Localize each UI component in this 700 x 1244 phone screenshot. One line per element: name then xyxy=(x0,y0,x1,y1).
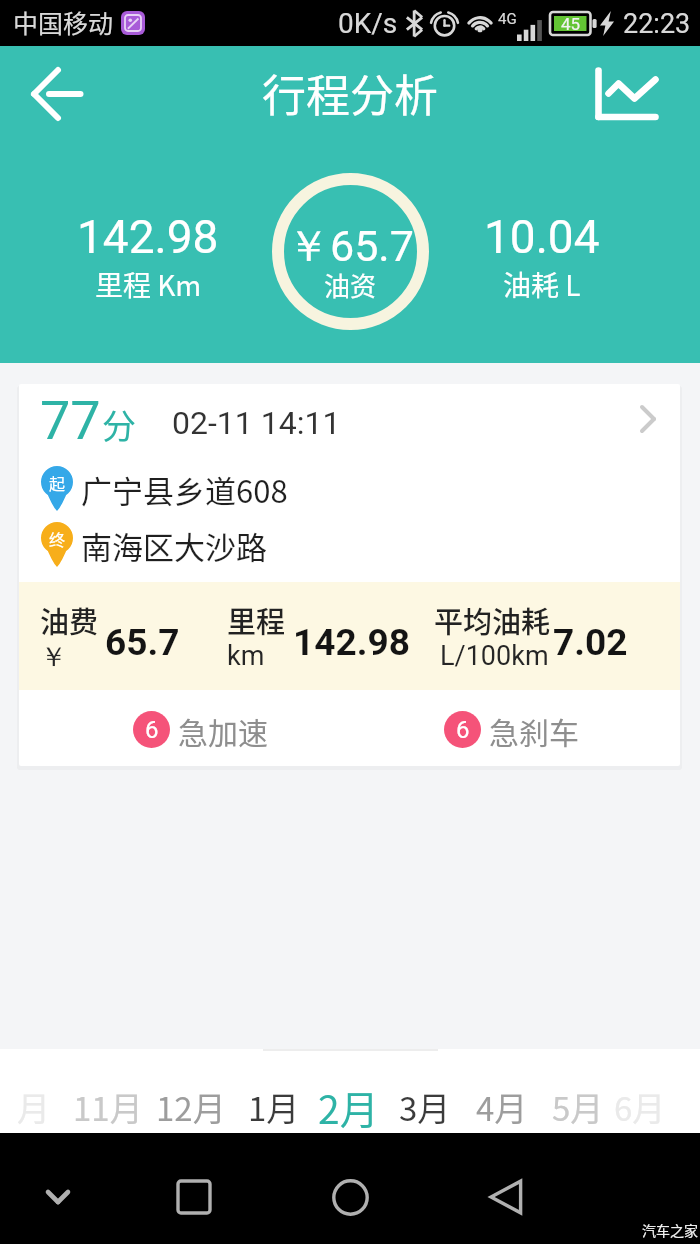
staticText: 月 xyxy=(17,1083,50,1131)
button[interactable]: 3月 xyxy=(387,1049,463,1133)
staticText: 142.98 xyxy=(77,210,219,264)
staticText: 142.98 xyxy=(293,621,410,664)
button[interactable]: Back xyxy=(449,1157,563,1237)
button[interactable]: Back xyxy=(11,48,103,140)
button[interactable]: Open trip detail xyxy=(618,389,677,448)
staticText: 3月 xyxy=(399,1083,451,1131)
staticText: 77 xyxy=(40,389,101,452)
button[interactable]: 6 xyxy=(133,709,260,749)
staticText: 急刹车 xyxy=(489,709,579,749)
staticText: 急加速 xyxy=(178,709,268,749)
staticText: 7.02 xyxy=(553,621,628,664)
button[interactable]: Statistics chart xyxy=(581,48,673,140)
staticText: 4月 xyxy=(476,1083,528,1131)
staticText: 行程分析 xyxy=(262,61,438,125)
staticText: 油耗 L xyxy=(503,264,581,305)
button[interactable]: 77 xyxy=(19,384,680,766)
button[interactable]: 6 xyxy=(444,709,571,749)
staticText: 10.04 xyxy=(484,210,600,264)
staticText: 12月 xyxy=(156,1083,226,1131)
button[interactable]: Home xyxy=(293,1157,407,1237)
staticText: ￥ xyxy=(40,640,67,674)
staticText: ￥65.7 xyxy=(287,220,414,274)
button[interactable]: 6月 xyxy=(602,1049,678,1133)
staticText: 终 xyxy=(49,527,66,550)
staticText: 里程 xyxy=(227,599,286,641)
staticText: 南海区大沙路 xyxy=(81,523,267,568)
staticText: 平均油耗 xyxy=(434,599,551,641)
staticText: 中国移动 xyxy=(13,4,114,40)
staticText: 22:23 xyxy=(623,8,691,40)
staticText: L/100km xyxy=(440,640,549,672)
staticText: 广宁县乡道608 xyxy=(81,467,288,512)
staticText: 分 xyxy=(102,400,136,449)
staticText: 11月 xyxy=(73,1083,143,1131)
staticText: 油资 xyxy=(324,266,377,304)
staticText: 6月 xyxy=(614,1083,666,1131)
staticText: 5月 xyxy=(552,1083,604,1131)
button[interactable]: 月 xyxy=(0,1049,71,1133)
button[interactable]: Recent apps xyxy=(137,1157,251,1237)
staticText: 油费 xyxy=(40,599,99,641)
staticText: 0K/s xyxy=(338,7,398,40)
staticText: 4G xyxy=(498,10,517,28)
staticText: 2月 xyxy=(318,1079,379,1135)
button[interactable]: 12月 xyxy=(153,1049,229,1133)
button[interactable]: 1月 xyxy=(236,1049,312,1133)
staticText: 6 xyxy=(145,716,159,744)
staticText: 1月 xyxy=(248,1083,300,1131)
button[interactable]: 4月 xyxy=(464,1049,540,1133)
button[interactable]: Hide keyboard xyxy=(1,1157,115,1237)
button[interactable]: 11月 xyxy=(70,1049,146,1133)
staticText: 02-11 14:11 xyxy=(172,404,341,442)
staticText: 65.7 xyxy=(105,621,180,664)
staticText: km xyxy=(227,640,265,672)
button[interactable]: 2月 xyxy=(310,1049,386,1133)
staticText: 起 xyxy=(49,471,66,494)
staticText: 汽车之家 xyxy=(642,1220,698,1240)
staticText: 45 xyxy=(561,14,581,34)
staticText: 里程 Km xyxy=(95,264,202,305)
button[interactable]: 5月 xyxy=(540,1049,616,1133)
staticText: 6 xyxy=(456,716,470,744)
